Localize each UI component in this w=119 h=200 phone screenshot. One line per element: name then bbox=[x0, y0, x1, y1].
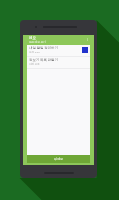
button[interactable]: 내일 할일 정리하기 bbox=[27, 45, 90, 56]
staticText: 오전 9:30 bbox=[29, 50, 40, 53]
button[interactable]: More options bbox=[85, 37, 90, 42]
staticText: 새 메모 bbox=[54, 157, 64, 161]
staticText: 메모 bbox=[29, 36, 36, 40]
button[interactable]: 장보기 목록 만들기 bbox=[27, 57, 90, 68]
button[interactable]: 새 메모 bbox=[27, 155, 90, 163]
staticText: 장보기 목록 만들기 bbox=[29, 57, 58, 62]
staticText: 어제 오후 bbox=[29, 62, 40, 65]
staticText: 내일 할일 정리하기 bbox=[29, 45, 58, 50]
staticText: 모든 메모 보기 bbox=[29, 40, 46, 44]
